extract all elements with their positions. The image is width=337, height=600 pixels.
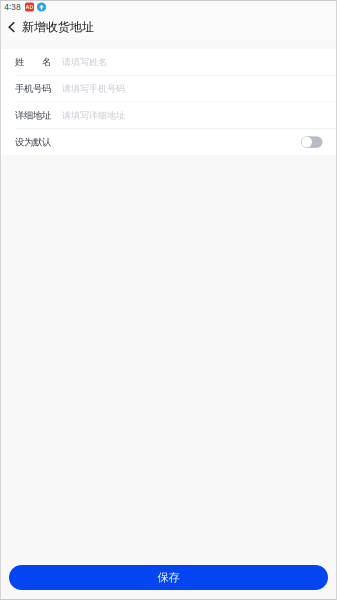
staticText: 请填写手机号码 (62, 83, 125, 94)
button[interactable]: 设为默认 (301, 136, 322, 148)
staticText: 新增收货地址 (22, 19, 94, 34)
staticText: 姓 名 (15, 56, 51, 68)
staticText: 4:38 (4, 2, 21, 12)
staticText: 保存 (157, 570, 179, 585)
staticText: 手机号码 (15, 83, 51, 95)
staticText: AD (25, 4, 33, 10)
staticText: 请填写详细地址 (62, 110, 125, 121)
staticText: 请填写姓名 (62, 56, 107, 68)
staticText: 详细地址 (15, 109, 51, 121)
staticText: 设为默认 (15, 136, 51, 148)
button[interactable]: 保存 (9, 565, 328, 590)
button[interactable]: 返回 (2, 14, 22, 40)
